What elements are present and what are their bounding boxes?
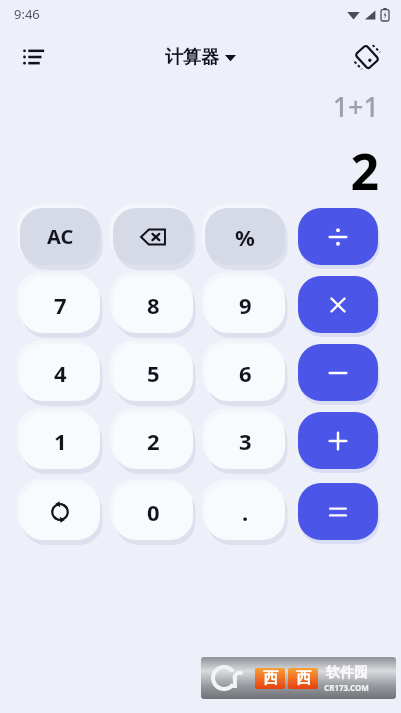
staticText: 计算器 [165, 46, 219, 69]
staticText: 9 [239, 290, 252, 320]
button[interactable]: 3 [205, 412, 285, 469]
button[interactable]: 计算器 [159, 42, 242, 73]
staticText: 西 [263, 669, 278, 688]
staticText: 西 [296, 669, 311, 688]
staticText: 0 [147, 497, 160, 527]
button[interactable]: . [205, 483, 285, 540]
staticText: CR173.COM [324, 682, 369, 693]
button[interactable]: Equals [298, 483, 378, 540]
button[interactable]: Minus [298, 344, 378, 401]
staticText: 2 [350, 137, 379, 205]
button[interactable]: 2 [113, 412, 193, 469]
button[interactable]: 1 [20, 412, 100, 469]
staticText: 5 [147, 358, 160, 388]
staticText: 6 [239, 358, 252, 388]
staticText: 4 [54, 358, 67, 388]
staticText: 1 [54, 426, 67, 456]
staticText: 1+1 [332, 88, 379, 125]
staticText: AC [47, 223, 74, 250]
staticText: 软件园 [326, 664, 368, 682]
staticText: 2 [147, 426, 160, 456]
staticText: 3 [239, 426, 252, 456]
staticText: 9:46 [14, 5, 40, 23]
button[interactable]: 8 [113, 276, 193, 333]
button[interactable]: Theme [343, 33, 391, 81]
button[interactable]: 6 [205, 344, 285, 401]
button[interactable]: Backspace [113, 208, 193, 265]
button[interactable]: Divide [298, 208, 378, 265]
button[interactable]: Plus [298, 412, 378, 469]
button[interactable]: 5 [113, 344, 193, 401]
staticText: . [242, 497, 249, 527]
staticText: 7 [54, 290, 67, 320]
staticText: 8 [147, 290, 160, 320]
button[interactable]: Convert [20, 483, 100, 540]
button[interactable]: 4 [20, 344, 100, 401]
button[interactable]: 0 [113, 483, 193, 540]
button[interactable]: 9 [205, 276, 285, 333]
button[interactable]: % [205, 208, 285, 265]
button[interactable]: AC [20, 208, 100, 265]
button[interactable]: Multiply [298, 276, 378, 333]
button[interactable]: History [10, 33, 58, 81]
staticText: % [235, 222, 255, 252]
button[interactable]: 7 [20, 276, 100, 333]
